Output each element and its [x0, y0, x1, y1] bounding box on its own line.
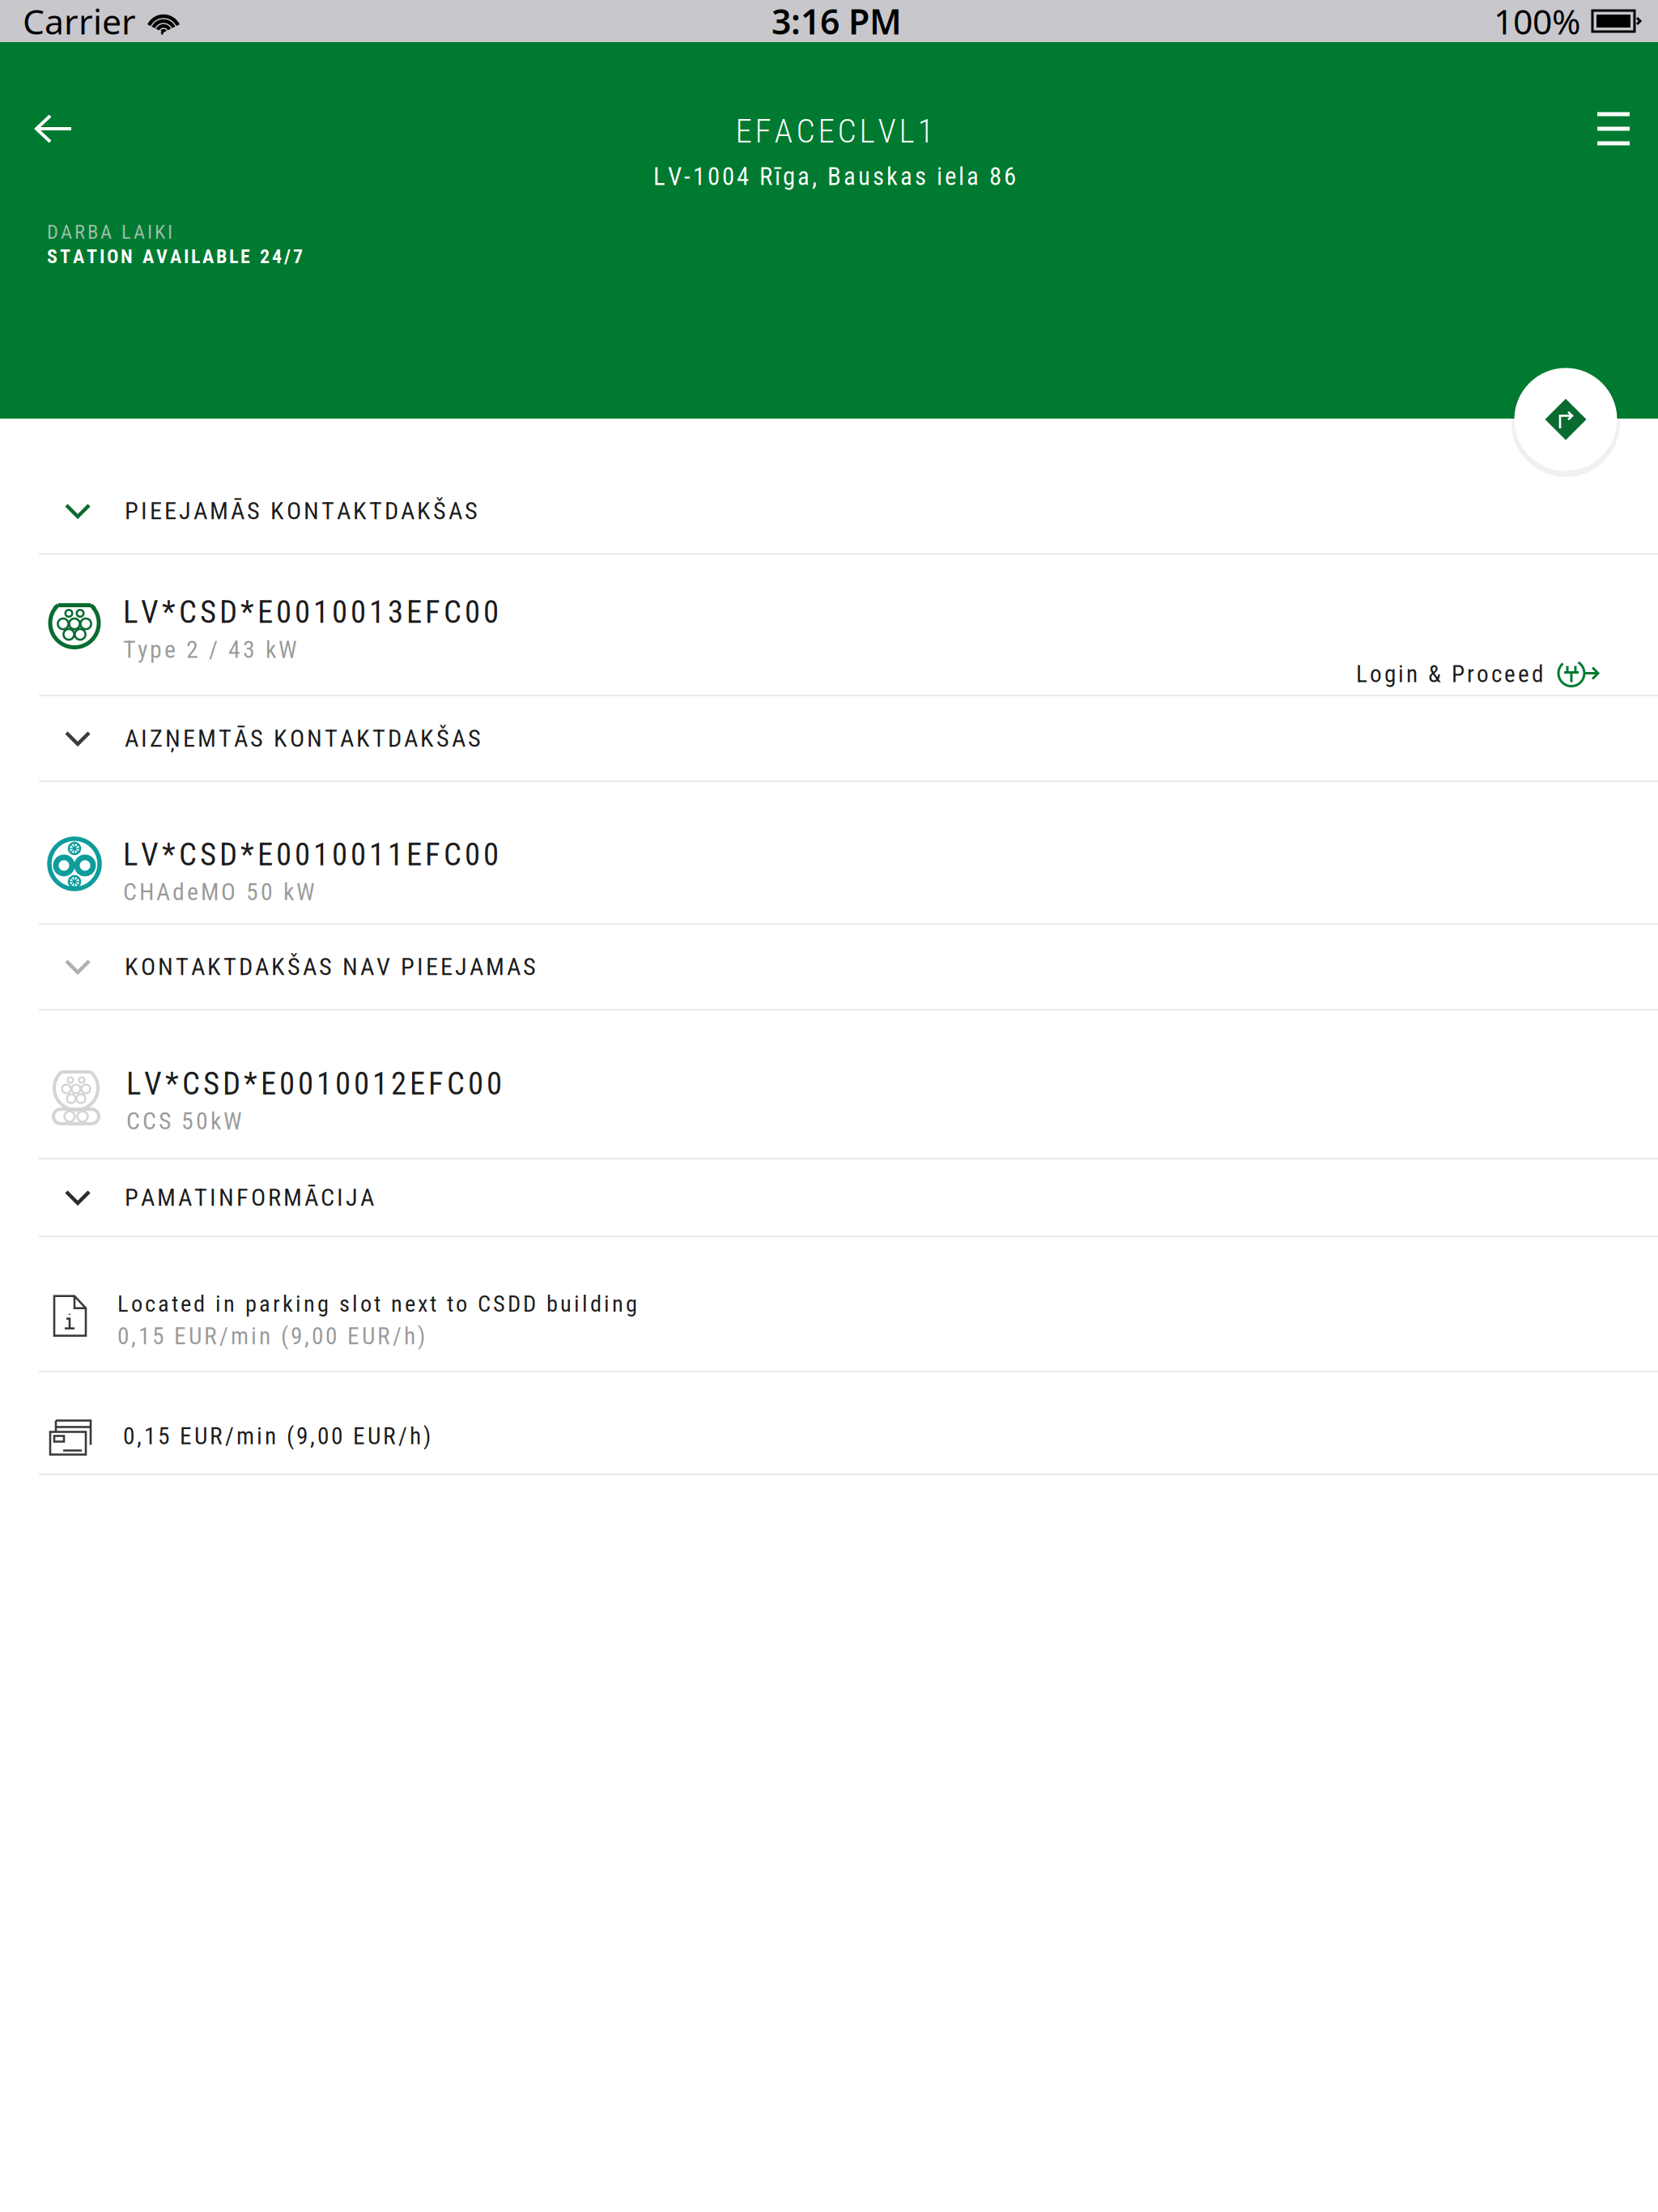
staticText: L V * C S D * E 0 0 1 0 0 1 3 E F C 0 0 [123, 594, 499, 631]
staticText: P A M A T I N F O R M Ā C I J A [125, 1183, 374, 1212]
button[interactable]: Back [0, 42, 100, 165]
staticText: P I E E J A M Ā S K O N T A K T D A K Š … [125, 497, 478, 525]
staticText: 3:16 PM [772, 0, 902, 44]
staticText: L o g i n & P r o c e e d [1356, 660, 1543, 688]
button[interactable]: A I Z Ņ E M T Ā S K O N T A K T D A K Š … [0, 696, 1658, 781]
button[interactable]: K O N T A K T D A K Š A S N A V P I E E … [0, 925, 1658, 1009]
button[interactable]: P I E E J A M Ā S K O N T A K T D A K Š … [0, 419, 1658, 553]
staticText: Carrier [23, 0, 136, 44]
button[interactable]: P A M A T I N F O R M Ā C I J A [0, 1159, 1658, 1236]
staticText: A I Z Ņ E M T Ā S K O N T A K T D A K Š … [125, 724, 481, 753]
staticText: C H A d e M O 5 0 k W [123, 878, 315, 906]
staticText: C C S 5 0 k W [126, 1107, 242, 1135]
staticText: L V - 1 0 0 4 R ī g a , B a u s k a s i … [653, 162, 1016, 191]
button[interactable]: Navigate to station [1508, 362, 1623, 477]
button[interactable]: L o g i n & P r o c e e d [1356, 652, 1658, 696]
staticText: 100% [1494, 0, 1580, 44]
staticText: L V * C S D * E 0 0 1 0 0 1 1 E F C 0 0 [123, 836, 499, 873]
staticText: K O N T A K T D A K Š A S N A V P I E E … [125, 952, 536, 981]
staticText: E F A C E C L V L 1 [735, 112, 934, 151]
staticText: 0 , 1 5 E U R / m i n ( 9 , 0 0 E U R / … [117, 1322, 425, 1350]
button[interactable]: Menu [1569, 42, 1658, 167]
staticText: S T A T I O N A V A I L A B L E 2 4 / 7 [47, 245, 303, 268]
staticText: 0 , 1 5 E U R / m i n ( 9 , 0 0 E U R / … [123, 1422, 431, 1450]
staticText: L V * C S D * E 0 0 1 0 0 1 2 E F C 0 0 [126, 1065, 502, 1102]
staticText: T y p e 2 / 4 3 k W [123, 635, 297, 664]
staticText: L o c a t e d i n p a r k i n g s l o t … [117, 1290, 637, 1317]
staticText: D A R B A L A I K I [47, 220, 172, 243]
